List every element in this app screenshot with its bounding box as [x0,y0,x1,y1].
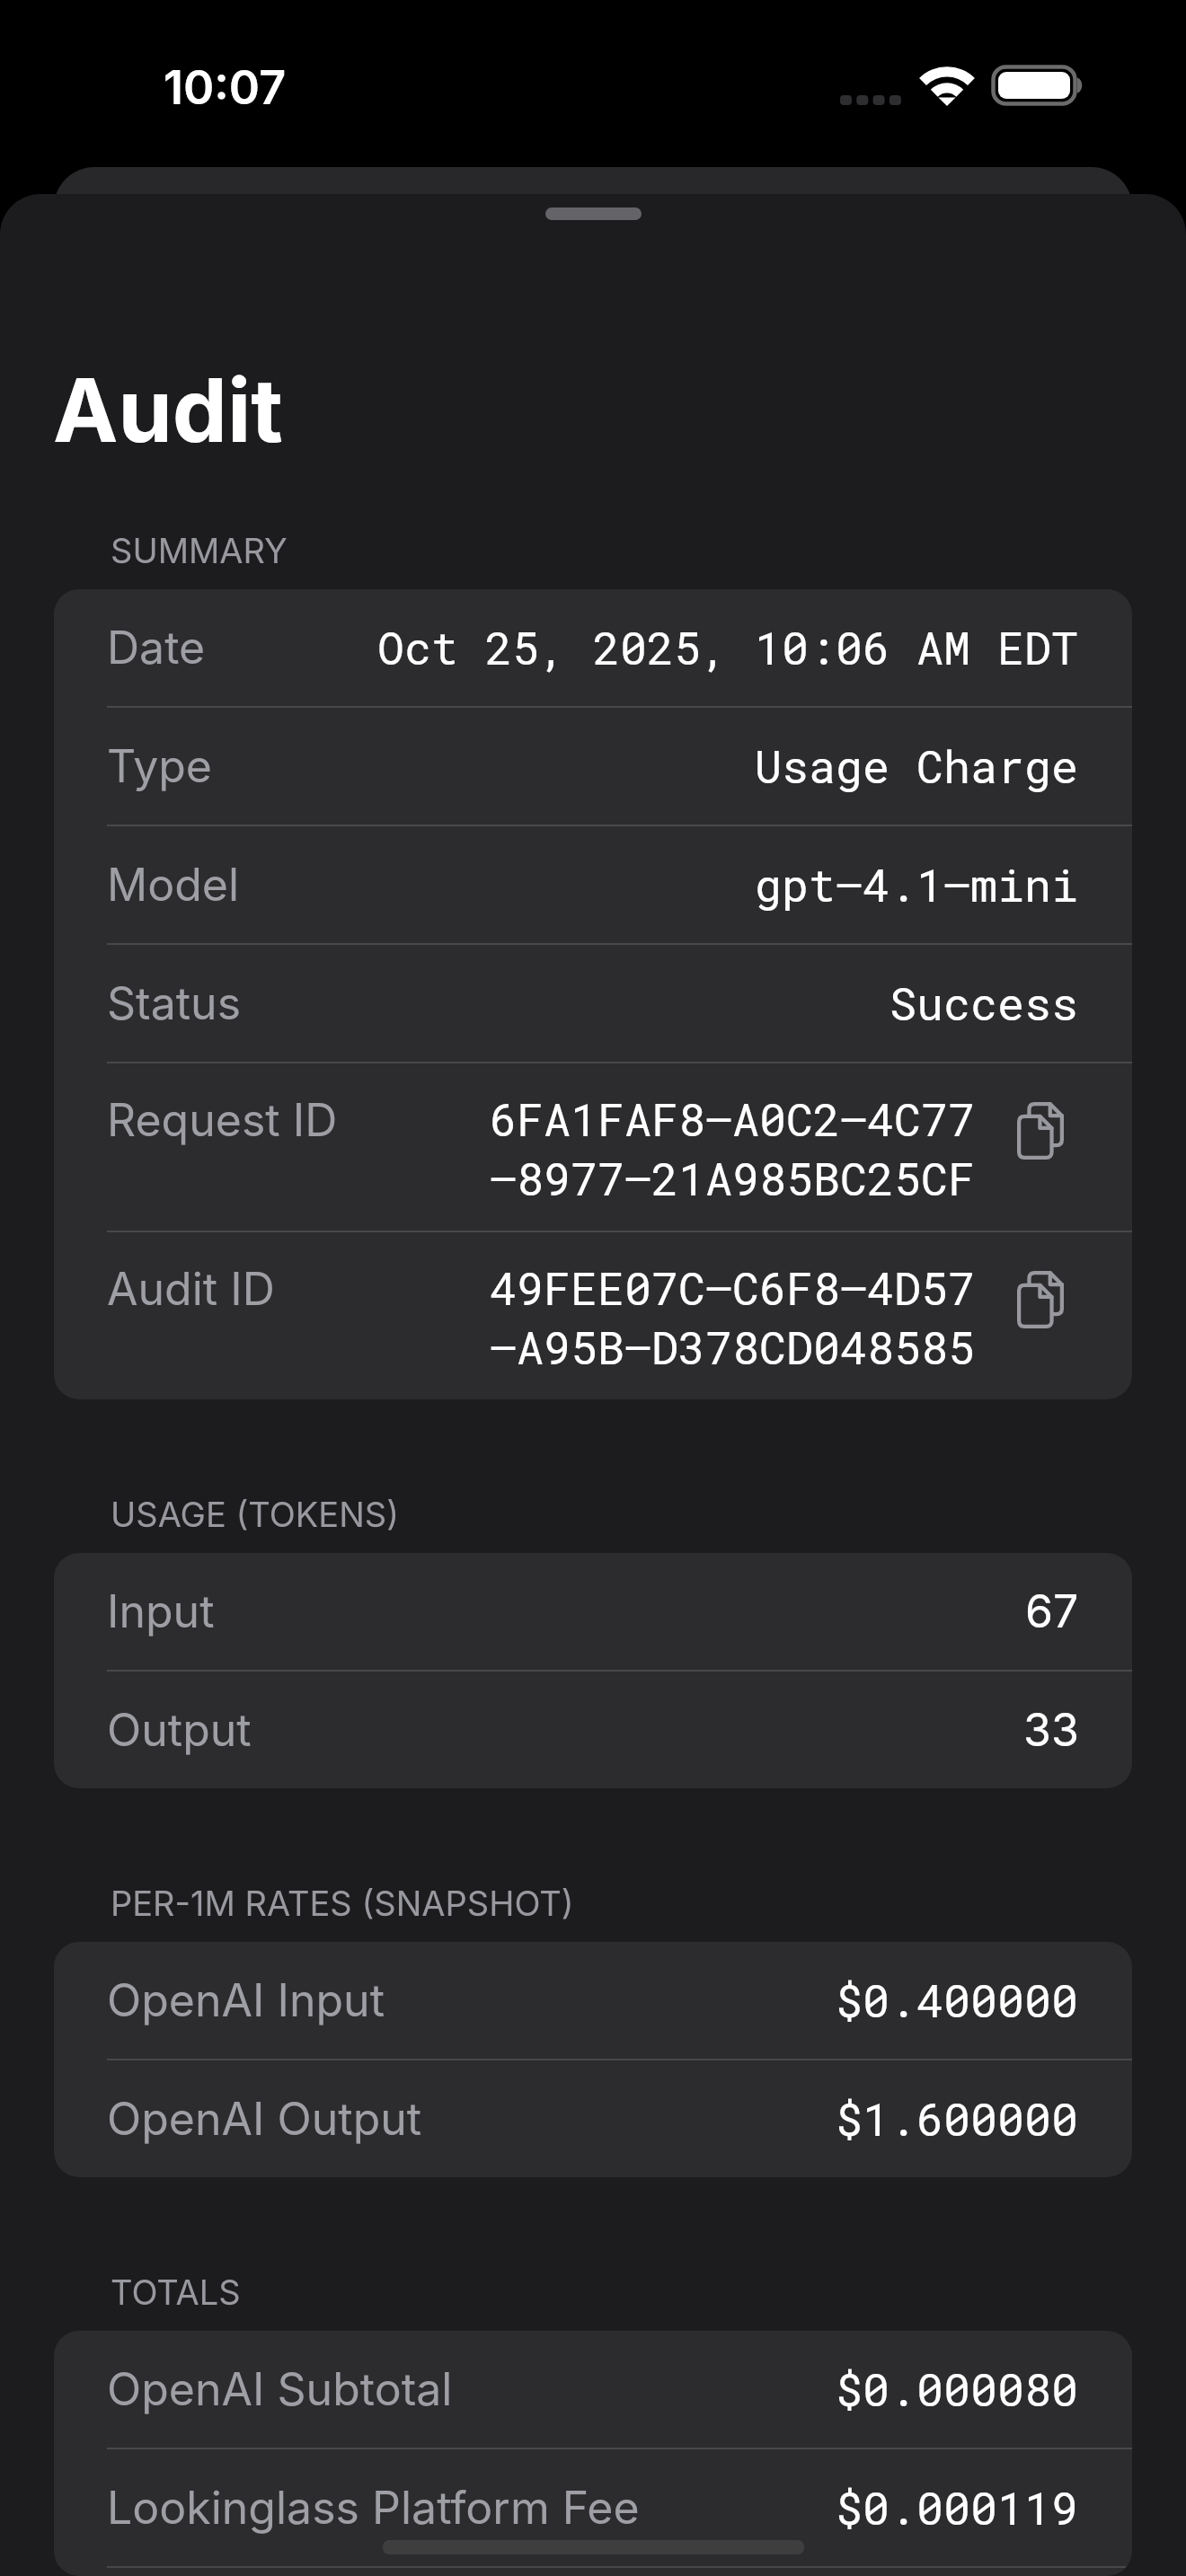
staticText: OpenAI Output [107,2092,422,2146]
staticText: TOTALS [111,2272,241,2313]
button[interactable]: Copy [1017,1264,1079,1336]
staticText: 10:07 [164,59,287,116]
button[interactable]: Lookinglass Platform Fee [54,2449,1132,2566]
staticText: Input [107,1584,215,1638]
staticText: gpt–4.1–mini [755,855,1079,914]
button[interactable]: Output [54,1672,1132,1788]
button[interactable]: OpenAI Input [54,1942,1132,2059]
button[interactable]: Request ID [54,1063,1132,1231]
staticText: 33 [1023,1703,1079,1757]
staticText: Model [107,858,240,912]
staticText: PER-1M RATES (SNAPSHOT) [111,1883,574,1924]
staticText: $0.400000 [836,1971,1079,2030]
staticText: Audit ID [107,1262,275,1316]
staticText: Request ID [107,1093,338,1147]
staticText: Lookinglass Platform Fee [107,2481,640,2535]
staticText: Status [107,976,242,1030]
staticText: 67 [1025,1584,1079,1638]
staticText: $0.000080 [836,2360,1079,2419]
button[interactable]: Audit ID [54,1232,1132,1399]
button[interactable]: Date [54,589,1132,706]
button[interactable]: Input [54,1553,1132,1670]
button[interactable]: OpenAI Subtotal [54,2331,1132,2448]
staticText: Date [107,621,206,675]
staticText: $1.600000 [836,2089,1079,2148]
staticText: OpenAI Subtotal [107,2362,453,2416]
button[interactable]: Copy [1017,1095,1079,1167]
staticText: USAGE (TOKENS) [111,1494,400,1535]
staticText: Output [107,1703,252,1757]
staticText: $0.000119 [836,2478,1079,2537]
staticText: Usage Charge [755,737,1079,796]
staticText: Audit [53,357,283,463]
staticText: OpenAI Input [107,1973,385,2027]
staticText: 49FEE07C–C6F8–4D57 [490,1258,976,1318]
button[interactable]: Model [54,826,1132,943]
staticText: –A95B–D378CD048585 [490,1318,976,1377]
staticText: 6FA1FAF8–A0C2–4C77 [490,1090,976,1149]
staticText: Type [107,739,213,793]
button[interactable]: Type [54,708,1132,825]
staticText: Success [889,974,1079,1033]
staticText: SUMMARY [111,530,288,571]
staticText: Oct 25, 2025, 10:06 AM EDT [377,618,1079,677]
button[interactable]: Status [54,945,1132,1062]
staticText: –8977–21A985BC25CF [490,1149,976,1208]
button[interactable]: OpenAI Output [54,2060,1132,2177]
